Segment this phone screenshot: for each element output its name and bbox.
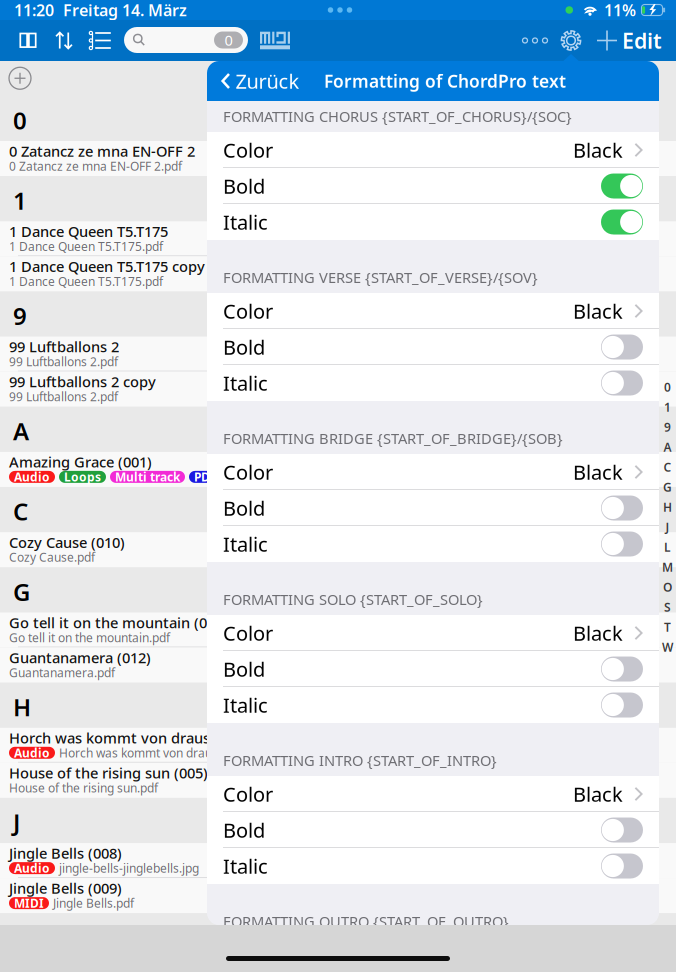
button[interactable]: MIDI [260,32,290,49]
staticText: H [13,691,31,723]
staticText: C [13,495,28,527]
staticText: Italic [223,853,268,879]
button[interactable]: Amazing Grace (001) [0,452,207,487]
staticText: 9 [13,300,27,332]
staticText: L [664,539,671,555]
staticText: Amazing Grace (001) [9,452,152,472]
button[interactable]: List options [89,31,111,50]
button[interactable]: Color [207,776,659,812]
staticText: Italic [223,692,268,718]
staticText: Horch was kommt von draussen re [9,728,252,748]
staticText: 99 Luftballons 2 [9,337,119,356]
staticText: Formatting of ChordPro text [324,69,566,92]
staticText: 99 Luftballons 2 copy [9,372,156,391]
staticText: Bold [223,656,265,682]
staticText: T [664,619,671,635]
button[interactable]: Jingle Bells (009) [0,878,207,913]
staticText: J [13,806,20,838]
button[interactable]: 1 Dance Queen T5.T175 [0,221,207,256]
button[interactable]: Edit [620,23,664,57]
staticText: Freitag 14. März [63,0,187,21]
staticText: Color [223,620,273,646]
button[interactable]: Color [207,454,659,490]
staticText: Color [223,298,273,324]
staticText: O [663,579,672,595]
button[interactable]: Italic [207,365,659,401]
button[interactable]: Horch was kommt von draussen re [0,728,207,763]
staticText: FORMATTING BRIDGE {START_OF_BRIDGE}/{SOB… [223,428,563,448]
staticText: G [663,479,672,495]
button[interactable]: Italic [207,848,659,884]
staticText: Audio [14,745,50,761]
staticText: Multi track [115,469,180,485]
button[interactable]: 1 Dance Queen T5.T175 copy [0,256,207,291]
button[interactable]: 99 Luftballons 2 copy [0,372,207,407]
staticText: Edit [622,26,662,55]
staticText: FORMATTING VERSE {START_OF_VERSE}/{SOV} [223,267,538,287]
staticText: Black [573,781,623,807]
button[interactable]: 0 Zatancz ze mna EN-OFF 2 [0,141,207,176]
staticText: A [663,439,671,455]
button[interactable]: Add song [2,60,38,96]
button[interactable]: Italic [207,687,659,723]
button[interactable]: 99 Luftballons 2 [0,337,207,372]
staticText: 11% [604,0,636,21]
staticText: Color [223,459,273,485]
staticText: Color [223,781,273,807]
staticText: Italic [223,370,268,396]
button[interactable]: Color [207,293,659,329]
staticText: Audio [14,469,50,485]
button[interactable]: Settings [560,29,582,51]
staticText: Black [573,459,623,485]
staticText: W [662,639,673,655]
button[interactable]: Guantanamera (012) [0,647,207,682]
staticText: Black [573,298,623,324]
button[interactable]: Cozy Cause (010) [0,532,207,567]
button[interactable]: Bold [207,168,659,204]
button[interactable]: House of the rising sun (005) [0,763,207,798]
button[interactable]: Bold [207,812,659,848]
staticText: Bold [223,495,265,521]
staticText: S [664,599,671,615]
staticText: Horch was kommt von draussen r [59,745,246,761]
staticText: 99 Luftballons 2.pdf [9,354,118,369]
button[interactable]: Color [207,132,659,168]
button[interactable]: Add [596,30,617,51]
button[interactable]: Sort [55,31,73,49]
button[interactable]: Jingle Bells (008) [0,843,207,878]
button[interactable]: Bold [207,651,659,687]
button[interactable]: Library [19,31,36,49]
staticText: Color [223,137,273,163]
staticText: Bold [223,173,265,199]
staticText: House of the rising sun.pdf [9,780,158,796]
staticText: A [226,469,234,485]
staticText: Jingle Bells (008) [9,843,122,863]
staticText: Cozy Cause (010) [9,532,125,552]
button[interactable]: Bold [207,329,659,365]
staticText: J [665,519,669,535]
button[interactable]: More [517,26,553,54]
staticText: MIDI [14,895,44,911]
button[interactable]: Color [207,615,659,651]
staticText: Bold [223,334,265,360]
button[interactable]: Go tell it on the mountain (004) [0,612,207,647]
staticText: C [663,459,671,475]
staticText: Audio [14,860,50,876]
staticText: 11:20 [14,0,54,21]
staticText: Italic [223,531,268,557]
staticText: 0 Zatancz ze mna EN-OFF 2 [9,141,195,161]
staticText: Black [573,620,623,646]
button[interactable]: Search [124,27,248,53]
button[interactable]: Zurück [215,61,325,101]
staticText: 1 Dance Queen T5.T175 [9,222,168,241]
staticText: 1 [13,184,27,216]
staticText: M [662,559,673,575]
staticText: 0 [664,379,671,395]
button[interactable]: Italic [207,526,659,562]
staticText: FORMATTING OUTRO {START_OF_OUTRO} [223,911,509,931]
button[interactable]: Italic [207,204,659,240]
staticText: 1 [664,399,671,415]
staticText: Go tell it on the mountain.pdf [9,629,170,645]
staticText: A [13,415,29,447]
button[interactable]: Bold [207,490,659,526]
